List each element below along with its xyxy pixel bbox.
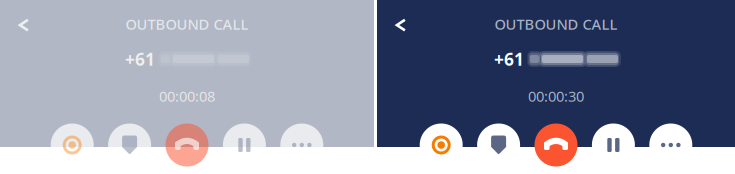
staticText: 00:00:30 (528, 86, 584, 106)
staticText: OUTBOUND CALL (494, 14, 617, 34)
button[interactable]: More (280, 123, 323, 166)
button[interactable]: Mute (108, 123, 151, 166)
button[interactable]: Hold (223, 123, 266, 166)
staticText: 00:00:08 (159, 86, 215, 106)
staticText: +61 (125, 47, 155, 70)
button[interactable]: Record (51, 123, 94, 166)
staticText: +61 (494, 47, 524, 70)
button[interactable]: End call (165, 123, 208, 166)
button[interactable]: More (649, 123, 692, 166)
button[interactable]: Hold (592, 123, 635, 166)
button[interactable]: End call (534, 123, 577, 166)
button[interactable]: Mute (477, 123, 520, 166)
button[interactable]: Back (381, 5, 421, 45)
button[interactable]: Back (4, 5, 44, 45)
staticText: OUTBOUND CALL (125, 14, 248, 34)
button[interactable]: Record (420, 123, 463, 166)
